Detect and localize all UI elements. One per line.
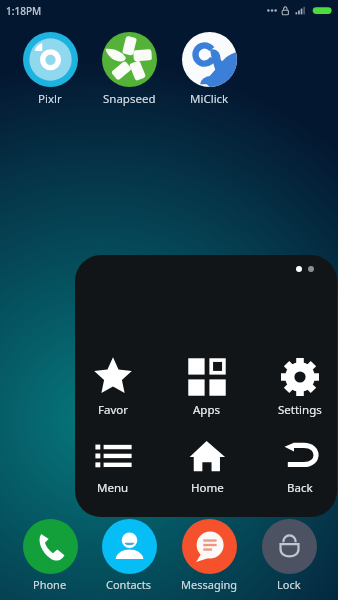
staticText: Phone — [33, 577, 67, 592]
staticText: Messaging — [181, 577, 238, 592]
button[interactable]: Snapseed — [89, 32, 169, 107]
button[interactable]: Favor — [75, 358, 156, 424]
button[interactable]: Apps — [164, 358, 250, 424]
staticText: Contacts — [106, 577, 152, 592]
staticText: Settings — [278, 402, 322, 418]
staticText: MiClick — [190, 91, 229, 107]
staticText: Back — [287, 480, 313, 496]
button[interactable]: Home — [164, 436, 250, 502]
button[interactable]: Back — [257, 436, 337, 502]
button[interactable]: Messaging — [169, 519, 249, 592]
button[interactable]: Phone — [10, 519, 90, 592]
staticText: Home — [191, 480, 224, 496]
staticText: Snapseed — [103, 91, 156, 107]
staticText: Apps — [193, 402, 221, 418]
button[interactable]: MiClick — [169, 32, 249, 107]
staticText: Lock — [277, 577, 301, 592]
button[interactable]: Lock — [249, 519, 329, 592]
button[interactable]: Menu — [75, 436, 156, 502]
staticText: Menu — [97, 480, 129, 496]
button[interactable]: Pixlr — [10, 32, 90, 107]
button[interactable]: Settings — [257, 358, 337, 424]
staticText: 1:18PM — [6, 4, 42, 18]
button[interactable]: Contacts — [89, 519, 169, 592]
staticText: Favor — [98, 402, 128, 418]
staticText: Pixlr — [38, 91, 62, 107]
